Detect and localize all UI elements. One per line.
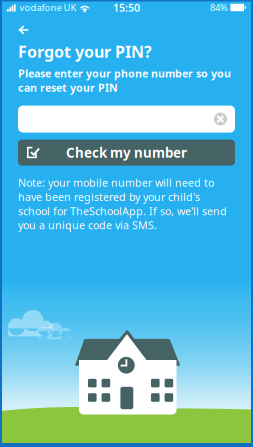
staticText: 15:50 [113, 0, 140, 15]
button[interactable]: Check my number [18, 140, 235, 166]
staticText: Please enter your phone number so you ca… [18, 66, 231, 94]
staticText: Note: your mobile number will need to ha… [18, 176, 227, 232]
staticText: vodafone UK [19, 1, 76, 14]
staticText: Check my number [66, 144, 187, 161]
staticText: Forgot your PIN? [18, 41, 152, 62]
button[interactable]: Back [0, 20, 39, 40]
staticText: 84% [210, 1, 228, 14]
